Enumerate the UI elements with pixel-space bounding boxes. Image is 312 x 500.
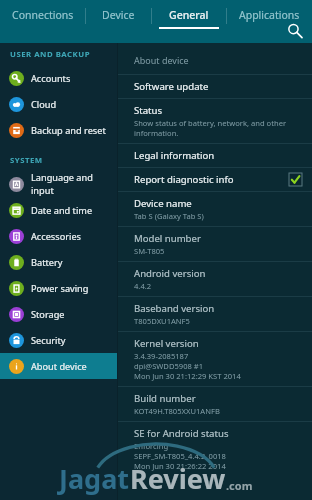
- button[interactable]: Accessories: [0, 223, 117, 249]
- button[interactable]: Backup and reset: [0, 117, 117, 143]
- button[interactable]: Device: [86, 0, 151, 31]
- button[interactable]: Report diagnostic info checkbox: [289, 173, 302, 186]
- staticText: Review: [130, 460, 226, 497]
- staticText: Build number: [134, 392, 196, 405]
- staticText: Device name: [134, 197, 192, 210]
- staticText: T805DXU1ANF5: [134, 316, 190, 326]
- staticText: Jagat: [59, 460, 130, 497]
- staticText: Baseband version: [134, 302, 215, 315]
- staticText: USER AND BACKUP: [10, 49, 91, 60]
- staticText: SYSTEM: [10, 155, 43, 166]
- staticText: Enforcing SEPF_SM-T805_4.4.2_0018 Mon Ju…: [134, 441, 226, 471]
- button[interactable]: Build number: [118, 386, 312, 421]
- staticText: Tab S (Galaxy Tab S): [134, 211, 204, 221]
- staticText: Date and time: [31, 204, 93, 217]
- staticText: Legal information: [134, 149, 215, 162]
- button[interactable]: Cloud: [0, 91, 117, 117]
- staticText: Kernel version: [134, 337, 199, 350]
- staticText: Android version: [134, 267, 206, 280]
- staticText: Show status of battery, network, and oth…: [134, 118, 287, 138]
- button[interactable]: Date and time: [0, 197, 117, 223]
- button[interactable]: Model number: [118, 226, 312, 261]
- staticText: SM-T805: [134, 246, 165, 256]
- button[interactable]: Legal information: [118, 143, 312, 167]
- button[interactable]: About device: [0, 353, 117, 379]
- button[interactable]: Status: [118, 98, 312, 143]
- staticText: Accessories: [31, 230, 81, 243]
- button[interactable]: Baseband version: [118, 296, 312, 331]
- staticText: Battery: [31, 256, 63, 269]
- staticText: Storage: [31, 308, 65, 321]
- button[interactable]: Accounts: [0, 65, 117, 91]
- button[interactable]: Connections: [0, 0, 85, 31]
- staticText: Report diagnostic info: [134, 173, 234, 186]
- staticText: Language and input: [31, 171, 117, 197]
- button[interactable]: Storage: [0, 301, 117, 327]
- button[interactable]: General: [152, 0, 226, 31]
- staticText: General: [169, 8, 209, 22]
- staticText: Software update: [134, 80, 209, 93]
- button[interactable]: Android version: [118, 261, 312, 296]
- staticText: Device: [102, 8, 135, 22]
- staticText: 3.4.39-2085187 dpi@SWDD5908 #1 Mon Jun 3…: [134, 351, 241, 381]
- staticText: About device: [31, 360, 87, 373]
- button[interactable]: Kernel version: [118, 331, 312, 386]
- button[interactable]: Language and input: [0, 171, 117, 197]
- button[interactable]: Software update: [118, 74, 312, 98]
- staticText: 4.4.2: [134, 281, 152, 291]
- button[interactable]: Applications: [227, 0, 312, 31]
- staticText: Power saving: [31, 282, 89, 295]
- button[interactable]: Power saving: [0, 275, 117, 301]
- button[interactable]: Battery: [0, 249, 117, 275]
- staticText: Accounts: [31, 72, 71, 85]
- button[interactable]: Report diagnostic info: [118, 167, 312, 191]
- button[interactable]: Device name: [118, 191, 312, 226]
- staticText: Cloud: [31, 98, 57, 111]
- staticText: Applications: [239, 8, 300, 22]
- button[interactable]: Security: [0, 327, 117, 353]
- staticText: SE for Android status: [134, 427, 229, 440]
- staticText: Security: [31, 334, 66, 347]
- staticText: .com: [226, 478, 253, 493]
- staticText: KOT49H.T805XXU1ANFB: [134, 406, 220, 416]
- staticText: Model number: [134, 232, 201, 245]
- staticText: Status: [134, 104, 163, 117]
- staticText: Backup and reset: [31, 124, 106, 137]
- button[interactable]: Search: [284, 20, 306, 42]
- staticText: Connections: [12, 8, 74, 22]
- staticText: About device: [134, 54, 189, 66]
- button[interactable]: SE for Android status: [118, 421, 312, 476]
